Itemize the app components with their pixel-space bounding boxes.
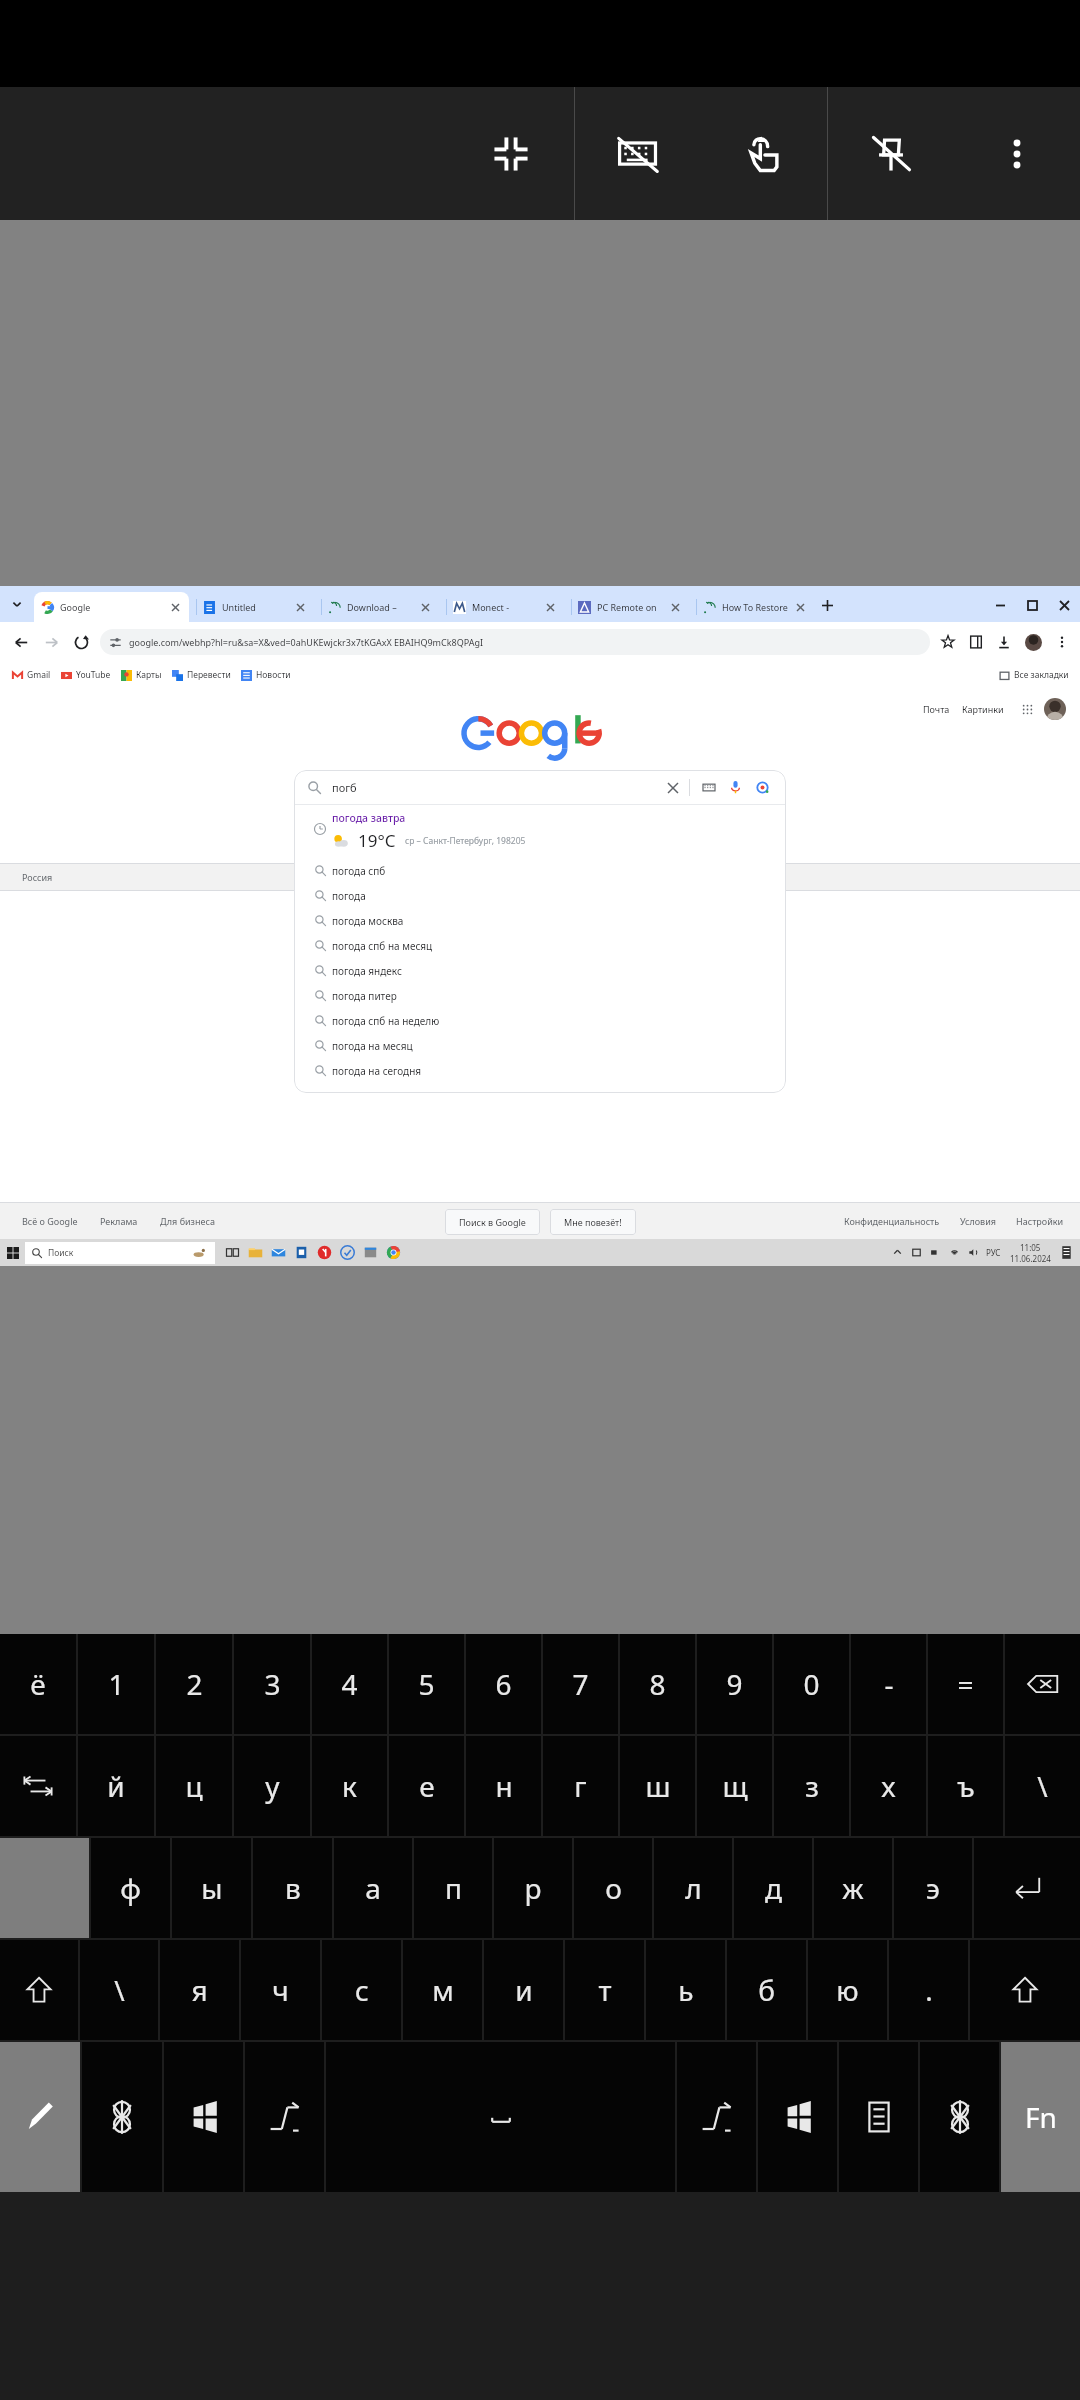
button[interactable]: ё [0,1634,76,1734]
button[interactable]: Control [82,2042,162,2192]
button[interactable]: 4 [312,1634,387,1734]
button[interactable]: к [312,1736,387,1836]
button[interactable]: погода завтра [294,811,786,858]
button[interactable]: Taskbar item [336,1239,359,1266]
button[interactable]: й [78,1736,154,1836]
button[interactable]: Alt [245,2042,324,2192]
button[interactable]: ю [808,1940,887,2040]
button[interactable]: Monect - Remote [439,592,564,622]
button[interactable]: погода яндекс [294,958,786,983]
button[interactable]: Close tab [793,600,807,614]
button[interactable]: Close tab [543,600,557,614]
button[interactable]: Start [0,1239,25,1266]
button[interactable]: погода на сегодня [294,1058,786,1083]
button[interactable]: Back [6,627,36,657]
button[interactable]: Downloads [990,628,1018,656]
button[interactable]: а [334,1838,412,1938]
button[interactable]: Gmail [7,669,56,681]
button[interactable]: Настройки [1016,1215,1064,1227]
button[interactable]: ж [814,1838,892,1938]
button[interactable]: Мне повезёт! [550,1209,636,1235]
button[interactable]: Close tab [668,600,682,614]
button[interactable]: PC Remote on the [564,592,689,622]
button[interactable]: Taskbar item [244,1239,267,1266]
button[interactable]: г [543,1736,618,1836]
button[interactable]: Taskbar item [313,1239,336,1266]
button[interactable]: Taskbar item [221,1239,244,1266]
button[interactable]: Реклама [100,1215,138,1227]
button[interactable]: On-screen keyboard [699,778,718,797]
button[interactable]: Account [1044,698,1066,720]
button[interactable]: р [494,1838,572,1938]
button[interactable]: Для бизнеса [160,1215,215,1227]
button[interactable]: Backspace [1005,1634,1080,1734]
button[interactable]: Voice search [726,778,745,797]
button[interactable]: How To Restore Pu [689,592,814,622]
button[interactable]: ъ [928,1736,1003,1836]
button[interactable]: 7 [543,1634,618,1734]
button[interactable]: 1 [78,1634,154,1734]
button[interactable]: Close tab [293,600,307,614]
button[interactable]: . [889,1940,968,2040]
button[interactable]: Google [34,592,189,622]
button[interactable]: з [774,1736,849,1836]
button[interactable]: Все закладки [993,669,1075,681]
button[interactable]: Tab [0,1736,76,1836]
button[interactable]: Search tabs [0,586,34,622]
button[interactable]: ф [91,1838,170,1938]
button[interactable]: Enter [974,1838,1080,1938]
button[interactable]: Taskbar item [267,1239,290,1266]
button[interactable]: More options [954,87,1080,220]
button[interactable]: Draw [0,2042,80,2192]
button[interactable]: Google apps [1018,700,1036,718]
button[interactable]: Fullscreen [448,87,574,220]
button[interactable]: Windows [758,2042,837,2192]
button[interactable]: н [466,1736,541,1836]
button[interactable]: - [851,1634,926,1734]
button[interactable]: 8 [620,1634,695,1734]
button[interactable]: Поиск в Google [445,1209,540,1235]
button[interactable]: л [654,1838,732,1938]
button[interactable]: д [734,1838,812,1938]
button[interactable]: Profile [1018,627,1048,657]
button[interactable]: Windows [164,2042,243,2192]
button[interactable]: Menu [839,2042,918,2192]
button[interactable]: м [403,1940,482,2040]
button[interactable]: Chrome menu [1048,628,1076,656]
button[interactable]: Control [920,2042,999,2192]
button[interactable]: Minimize [984,588,1016,622]
button[interactable]: Bookmark [934,628,962,656]
button[interactable]: = [928,1634,1003,1734]
button[interactable]: Карты [116,669,167,681]
button[interactable]: Search by image [753,778,772,797]
button[interactable]: Unpin [828,87,954,220]
button[interactable]: погода спб на месяц [294,933,786,958]
button[interactable]: погода спб на неделю [294,1008,786,1033]
button[interactable]: 3 [234,1634,310,1734]
button[interactable]: погода на месяц [294,1033,786,1058]
button[interactable]: у [234,1736,310,1836]
button[interactable]: погода москва [294,908,786,933]
button[interactable]: Fn [1001,2042,1080,2192]
button[interactable]: Space [326,2042,675,2192]
button[interactable]: ь [646,1940,725,2040]
button[interactable]: Hide keyboard [575,87,701,220]
button[interactable]: ы [172,1838,251,1938]
button[interactable]: Close tab [168,600,182,614]
button[interactable]: Taskbar item [359,1239,382,1266]
button[interactable]: в [253,1838,332,1938]
button[interactable]: погода спб [294,858,786,883]
button[interactable]: Touch mode [701,87,827,220]
button[interactable]: Side panel [962,628,990,656]
button[interactable]: погода [294,883,786,908]
button[interactable]: 6 [466,1634,541,1734]
button[interactable]: Перевести [167,669,236,681]
button[interactable]: Clear [663,778,682,797]
button[interactable]: Shift [970,1940,1080,2040]
button[interactable]: погода питер [294,983,786,1008]
button[interactable]: Untitled documen [189,592,314,622]
button[interactable]: с [322,1940,401,2040]
button[interactable]: х [851,1736,926,1836]
button[interactable]: т [565,1940,644,2040]
button[interactable]: Почта [923,703,950,715]
